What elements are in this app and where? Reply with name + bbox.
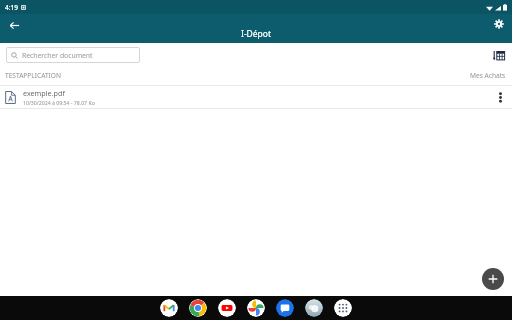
button[interactable]: YouTube (218, 299, 236, 317)
staticText: Rechercher document (22, 51, 93, 60)
staticText: 10/30/2024 à 09:54 - 78.07 Ko (23, 99, 95, 106)
button[interactable]: Trier par date (488, 45, 508, 65)
staticText: TESTAPPLICATION (5, 71, 62, 80)
staticText: Mes Achats (470, 71, 506, 80)
button[interactable]: Retour (4, 15, 24, 35)
staticText: I-Dépot (241, 28, 272, 40)
button[interactable]: Rechercher document (6, 47, 140, 63)
button[interactable]: Plus d'options (490, 87, 510, 107)
button[interactable]: Messages (276, 299, 294, 317)
button[interactable]: Gmail (160, 299, 178, 317)
staticText: exemple.pdf (23, 88, 65, 98)
button[interactable]: Paramètres (489, 14, 509, 34)
staticText: 4:19 (5, 3, 18, 12)
button[interactable]: exemple.pdf (0, 86, 512, 108)
button[interactable]: Photos (247, 299, 265, 317)
button[interactable]: Ajouter un document (482, 268, 504, 290)
button[interactable]: Chrome (189, 299, 207, 317)
button[interactable]: Météo (305, 299, 323, 317)
button[interactable]: Toutes les applications (334, 299, 352, 317)
